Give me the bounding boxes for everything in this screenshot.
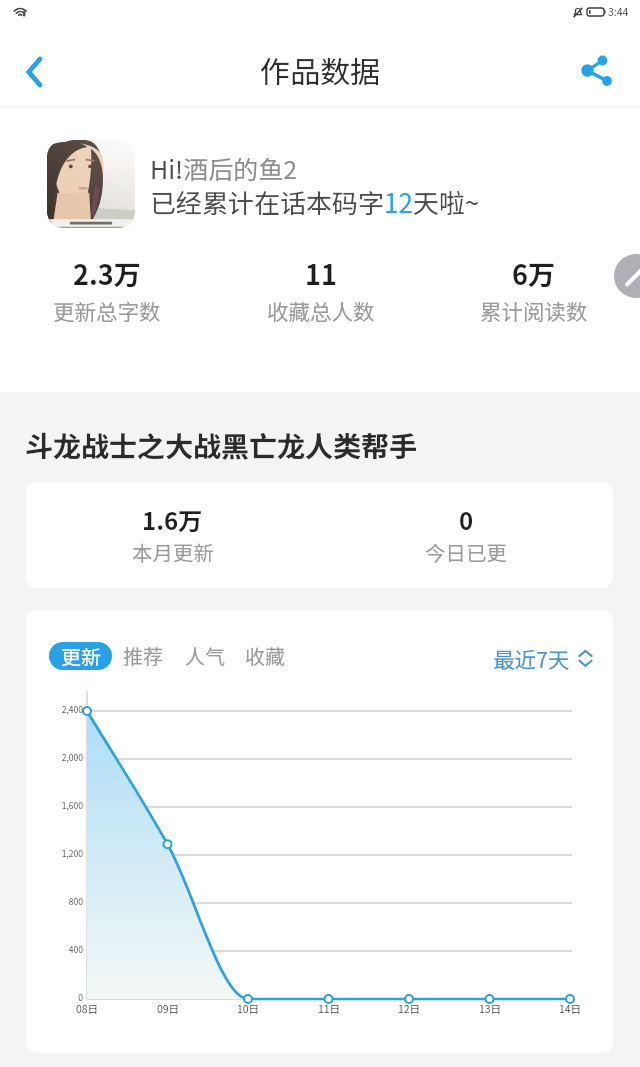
button[interactable]: 人气 (185, 641, 225, 670)
staticText: 累计阅读数 (480, 295, 588, 326)
staticText: 斗龙战士之大战黑亡龙人类帮手 (25, 425, 418, 466)
staticText: 今日已更 (425, 537, 507, 567)
staticText: 14日 (540, 1001, 600, 1016)
button[interactable]: 收藏 (245, 641, 285, 670)
staticText: 09日 (138, 1001, 198, 1016)
staticText: 12日 (379, 1001, 439, 1016)
staticText: 人气 (185, 641, 225, 670)
staticText: 2.3万 (73, 254, 141, 293)
staticText: 更新 (61, 642, 101, 670)
staticText: 1,600 (26, 799, 83, 811)
button[interactable]: Profile avatar (47, 140, 135, 228)
staticText: 2,000 (26, 751, 83, 763)
staticText: 0 (26, 991, 83, 1003)
staticText: 13日 (460, 1001, 520, 1016)
staticText: 10日 (218, 1001, 278, 1016)
button[interactable]: 推荐 (123, 641, 163, 670)
staticText: 800 (26, 895, 83, 907)
button[interactable]: Edit (614, 254, 640, 298)
staticText: 11日 (299, 1001, 359, 1016)
staticText: 0 (459, 502, 474, 537)
staticText: 6万 (512, 254, 555, 293)
staticText: 400 (26, 943, 83, 955)
button[interactable]: Share (565, 40, 627, 102)
button[interactable]: 更新 (49, 642, 112, 670)
staticText: 推荐 (123, 641, 163, 670)
staticText: 3:44 (608, 4, 629, 19)
button[interactable]: 最近7天 (493, 643, 593, 674)
staticText: 收藏 (245, 641, 285, 670)
staticText: 11 (305, 254, 337, 293)
staticText: 收藏总人数 (267, 295, 375, 326)
staticText: 更新总字数 (53, 295, 161, 326)
staticText: Hi!酒后的鱼2 (150, 150, 298, 186)
staticText: 2,400 (26, 703, 83, 715)
staticText: 1.6万 (142, 502, 203, 537)
staticText: 本月更新 (132, 537, 214, 567)
staticText: 作品数据 (260, 48, 380, 91)
button[interactable]: Back (3, 41, 65, 103)
staticText: 已经累计在话本码字12天啦~ (150, 183, 480, 221)
staticText: 08日 (57, 1001, 117, 1016)
staticText: 1,200 (26, 847, 83, 859)
staticText: 最近7天 (493, 643, 570, 674)
